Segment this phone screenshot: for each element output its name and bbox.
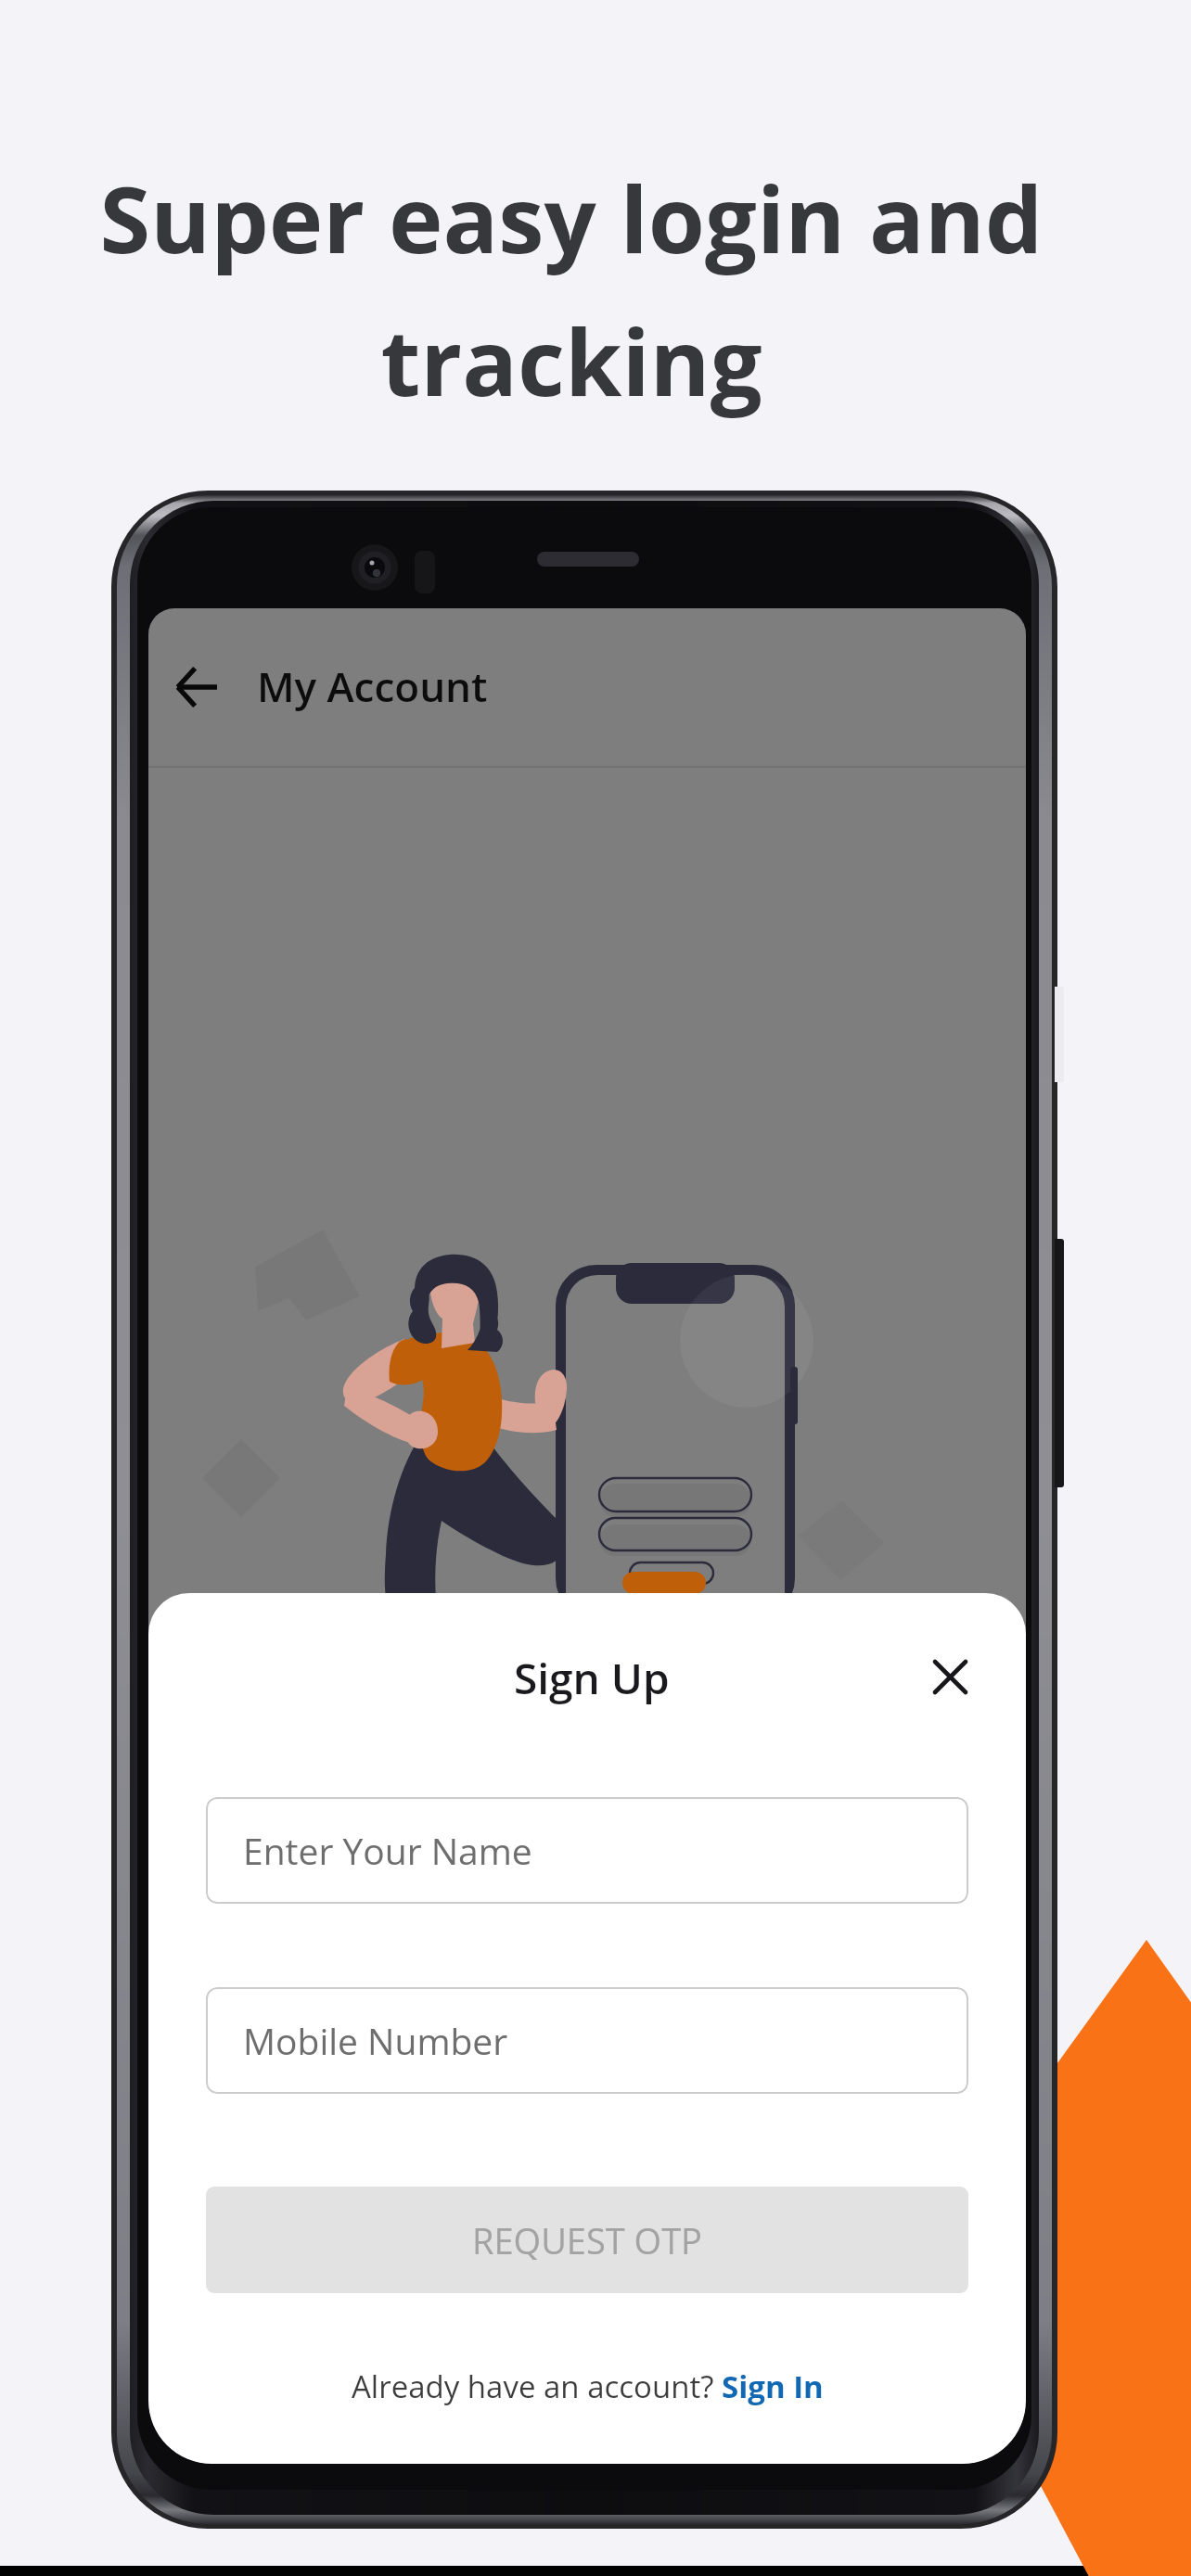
staticText: Super easy login and tracking: [0, 155, 1167, 423]
button[interactable]: Mobile Number: [206, 1987, 968, 2094]
staticText: Sign Up: [514, 1649, 670, 1707]
button[interactable]: Close: [909, 1636, 991, 1717]
button[interactable]: REQUEST OTP: [206, 2187, 968, 2293]
button[interactable]: Enter Your Name: [206, 1797, 968, 1904]
staticText: My Account: [257, 658, 488, 714]
staticText: REQUEST OTP: [472, 2216, 702, 2264]
staticText: Already have an account? Sign In: [352, 2366, 824, 2407]
staticText: Enter Your Name: [243, 1826, 532, 1875]
button[interactable]: Already have an account? Sign In: [148, 2358, 1026, 2414]
button[interactable]: Back: [156, 608, 236, 766]
staticText: Mobile Number: [243, 2016, 508, 2065]
